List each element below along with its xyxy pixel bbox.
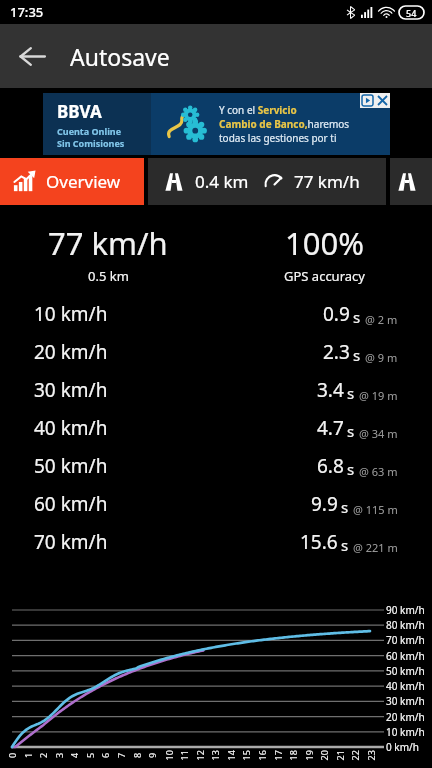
staticText: 9.9 [311,491,338,517]
staticText: 0.4 km [195,170,249,193]
staticText: 17 [271,749,283,760]
staticText: Overview [46,170,121,193]
staticText: 40 km/h [34,415,108,441]
staticText: 77 km/h [48,222,168,264]
staticText: GPS accuracy [284,267,365,285]
staticText: s [347,421,355,441]
staticText: Autosave [70,41,170,72]
staticText: @ 19 m [359,388,398,403]
staticText: s [353,345,361,365]
button[interactable]: Advertisement BBVA [43,93,390,155]
staticText: 3.4 [317,377,344,403]
staticText: 80 km/h [386,618,425,632]
staticText: 22 [348,749,360,760]
staticText: 60 km/h [386,649,425,663]
staticText: @ 63 m [359,464,398,479]
button[interactable]: 0.4 km [148,158,386,205]
staticText: s [347,459,355,479]
staticText: 21 [333,749,345,760]
staticText: 6 [99,752,111,758]
staticText: Sin Comisiones [57,137,125,149]
staticText: 0.9 [323,301,350,327]
staticText: 10 km/h [34,301,108,327]
staticText: 30 km/h [386,694,425,708]
staticText: 4.7 [317,415,344,441]
staticText: 60 km/h [34,491,108,517]
staticText: 5 [84,752,96,758]
staticText: 1 [22,752,34,758]
button[interactable]: 50 km/h [0,447,432,485]
button[interactable]: 10 km/h [0,295,432,333]
staticText: 16 [255,749,267,760]
staticText: 40 km/h [386,679,425,693]
staticText: 15 [239,749,251,760]
staticText: 6.8 [317,453,344,479]
staticText: 14 [224,749,236,760]
staticText: 17:35 [10,3,44,21]
staticText: 70 km/h [386,633,425,647]
staticText: @ 9 m [365,350,398,365]
staticText: Cambio de Banco,haremos [219,117,350,131]
staticText: BBVA [57,100,102,123]
staticText: 100% [285,222,364,264]
button[interactable]: Back [8,32,56,80]
staticText: 77 km/h [294,170,360,193]
staticText: 23 [364,749,376,760]
staticText: 19 [302,749,314,760]
button[interactable]: Next segment [390,158,432,205]
staticText: 15.6 [300,529,338,555]
staticText: 12 [193,749,205,760]
staticText: 2.3 [323,339,350,365]
staticText: @ 115 m [353,502,398,517]
staticText: Cuenta Online [57,125,122,137]
button[interactable]: Close ad [375,93,390,108]
button[interactable]: Overview [0,158,144,205]
staticText: Y con el Servicio [219,103,297,117]
staticText: 18 [286,749,298,760]
staticText: 9 [146,752,158,758]
staticText: 70 km/h [34,529,108,555]
staticText: todas las gestiones por ti [219,131,337,145]
staticText: 10 [162,749,174,760]
button[interactable]: 60 km/h [0,485,432,523]
staticText: @ 2 m [365,312,398,327]
staticText: 7 [115,752,127,758]
staticText: s [347,383,355,403]
staticText: 8 [131,752,143,758]
staticText: 11 [177,749,189,760]
staticText: 30 km/h [34,377,108,403]
staticText: 20 km/h [34,339,108,365]
staticText: 0 km/h [386,740,419,754]
staticText: s [341,535,349,555]
staticText: s [341,497,349,517]
staticText: 20 [317,749,329,760]
staticText: 0.5 km [88,267,129,285]
staticText: 13 [208,749,220,760]
button[interactable]: 70 km/h [0,523,432,561]
staticText: 20 km/h [386,710,425,724]
staticText: 4 [68,752,80,758]
button[interactable]: 20 km/h [0,333,432,371]
staticText: 50 km/h [386,664,425,678]
staticText: 0 [6,752,18,758]
staticText: @ 34 m [359,426,398,441]
staticText: 90 km/h [386,603,425,617]
staticText: 3 [53,752,65,758]
staticText: @ 221 m [353,540,398,555]
button[interactable]: 40 km/h [0,409,432,447]
staticText: 50 km/h [34,453,108,479]
staticText: 10 km/h [386,725,425,739]
staticText: s [353,307,361,327]
button[interactable]: 30 km/h [0,371,432,409]
staticText: 2 [37,752,49,758]
staticText: 54 [406,7,417,19]
